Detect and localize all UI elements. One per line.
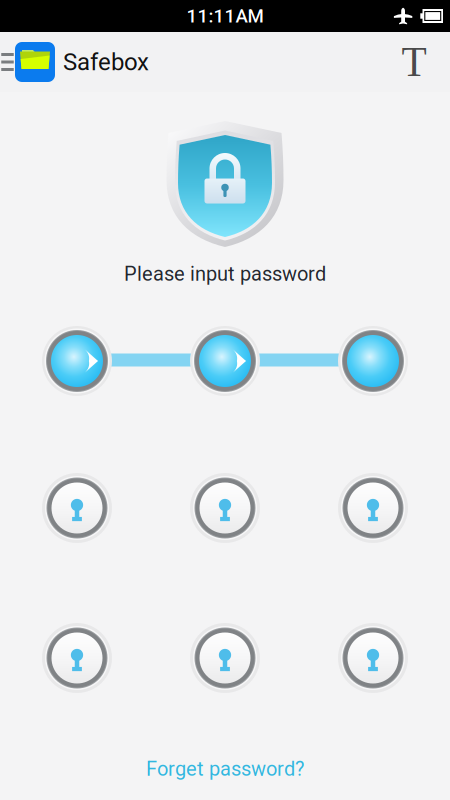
button[interactable]: Menu xyxy=(0,32,15,92)
staticText: Please input password xyxy=(124,262,326,286)
staticText: 11:11AM xyxy=(186,5,263,27)
button[interactable]: Password slot 1 xyxy=(42,326,112,396)
button[interactable]: Password slot 2 xyxy=(190,326,260,396)
staticText: Safebox xyxy=(63,48,149,76)
button[interactable]: Password slot 5 xyxy=(190,473,260,543)
button[interactable]: Password slot 6 xyxy=(338,473,408,543)
button[interactable]: Password slot 4 xyxy=(42,473,112,543)
button[interactable]: Text options xyxy=(390,32,438,92)
staticText: T xyxy=(401,39,426,85)
button[interactable]: Password slot 8 xyxy=(190,623,260,693)
button[interactable]: Password slot 7 xyxy=(42,623,112,693)
button[interactable]: Password slot 9 xyxy=(338,623,408,693)
button[interactable]: Safebox xyxy=(15,32,149,92)
staticText: Forget password? xyxy=(146,757,304,781)
button[interactable]: Password slot 3 xyxy=(338,326,408,396)
button[interactable]: Forget password? xyxy=(130,749,320,789)
